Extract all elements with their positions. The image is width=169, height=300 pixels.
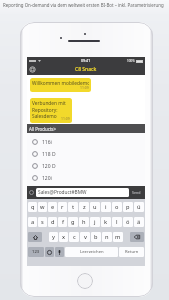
staticText: C8 Snack: [75, 66, 97, 73]
button[interactable]: i: [101, 202, 111, 212]
button[interactable]: 120 D: [27, 160, 145, 172]
staticText: 120i: [42, 175, 52, 182]
button[interactable]: f: [58, 217, 67, 227]
staticText: Sales@Product#BMW: [38, 189, 87, 196]
button[interactable]: a: [28, 217, 37, 227]
staticText: o: [115, 203, 119, 211]
button[interactable]: o: [112, 202, 122, 212]
staticText: 09:41: [81, 58, 91, 63]
staticText: m: [115, 233, 121, 241]
button[interactable]: c: [69, 232, 79, 242]
staticText: Return: [125, 249, 139, 255]
staticText: d: [51, 218, 55, 226]
button[interactable]: m: [113, 232, 123, 242]
staticText: n: [105, 233, 109, 241]
staticText: Reporting On-demand via dem weltweit ers…: [3, 2, 169, 8]
button[interactable]: Shift: [28, 232, 42, 242]
staticText: Verbunden mit Repository: Salesdemo: [32, 100, 66, 119]
button[interactable]: 120i: [27, 172, 145, 184]
staticText: b: [94, 233, 98, 241]
button[interactable]: Send: [129, 186, 143, 199]
staticText: h: [82, 218, 86, 226]
staticText: All Products>: [29, 126, 56, 132]
button[interactable]: All Products>: [27, 124, 145, 133]
button[interactable]: e: [48, 202, 57, 212]
button[interactable]: h: [79, 217, 89, 227]
button[interactable]: k: [101, 217, 111, 227]
staticText: w: [40, 203, 45, 211]
button[interactable]: z: [79, 202, 89, 212]
staticText: p: [126, 203, 130, 211]
staticText: u: [93, 203, 97, 211]
staticText: q: [31, 203, 35, 211]
staticText: ö: [126, 218, 130, 226]
staticText: l: [116, 218, 118, 226]
button[interactable]: j: [90, 217, 100, 227]
button[interactable]: s: [38, 217, 47, 227]
staticText: Willkommen mobiledemo: [32, 80, 89, 87]
button[interactable]: ö: [123, 217, 133, 227]
button[interactable]: u: [90, 202, 100, 212]
staticText: a: [31, 218, 35, 226]
button[interactable]: Backspace: [130, 232, 144, 242]
staticText: 11:09: [80, 85, 89, 90]
staticText: e: [51, 203, 55, 211]
button[interactable]: r: [58, 202, 67, 212]
button[interactable]: v: [80, 232, 90, 242]
button[interactable]: 116i: [27, 136, 145, 148]
button[interactable]: q: [28, 202, 37, 212]
staticText: 116i: [42, 139, 52, 146]
staticText: v: [84, 233, 87, 241]
staticText: r: [61, 203, 64, 211]
button[interactable]: Menu: [29, 66, 36, 73]
button[interactable]: 123: [28, 247, 44, 257]
button[interactable]: b: [91, 232, 101, 242]
button[interactable]: Return: [119, 247, 144, 257]
staticText: Send: [132, 190, 141, 195]
staticText: i: [105, 203, 107, 211]
staticText: z: [83, 203, 86, 211]
button[interactable]: ü: [134, 202, 144, 212]
button[interactable]: Emoji: [45, 247, 54, 257]
staticText: j: [94, 218, 96, 226]
button[interactable]: t: [68, 202, 78, 212]
button[interactable]: x: [59, 232, 68, 242]
staticText: ü: [137, 203, 141, 211]
staticText: x: [62, 233, 66, 241]
button[interactable]: g: [68, 217, 78, 227]
staticText: Leerzeichen: [80, 249, 104, 255]
staticText: 11:09: [61, 116, 70, 121]
button[interactable]: w: [38, 202, 47, 212]
button[interactable]: Leerzeichen: [65, 247, 118, 257]
staticText: k: [104, 218, 108, 226]
button[interactable]: d: [48, 217, 57, 227]
button[interactable]: l: [112, 217, 122, 227]
button[interactable]: ä: [134, 217, 144, 227]
staticText: y: [52, 233, 55, 241]
button[interactable]: y: [49, 232, 58, 242]
staticText: 123: [32, 249, 40, 255]
staticText: s: [41, 218, 44, 226]
staticText: 100%: [127, 59, 135, 63]
staticText: c: [73, 233, 76, 241]
staticText: t: [72, 203, 75, 211]
staticText: 118 D: [42, 151, 56, 158]
staticText: g: [71, 218, 75, 226]
button[interactable]: p: [123, 202, 133, 212]
button[interactable]: Attach: [29, 190, 34, 195]
button[interactable]: 118 D: [27, 148, 145, 160]
button[interactable]: n: [102, 232, 112, 242]
button[interactable]: Dictate: [55, 247, 64, 257]
staticText: ä: [137, 218, 141, 226]
staticText: f: [62, 218, 64, 226]
staticText: 120 D: [42, 163, 56, 170]
